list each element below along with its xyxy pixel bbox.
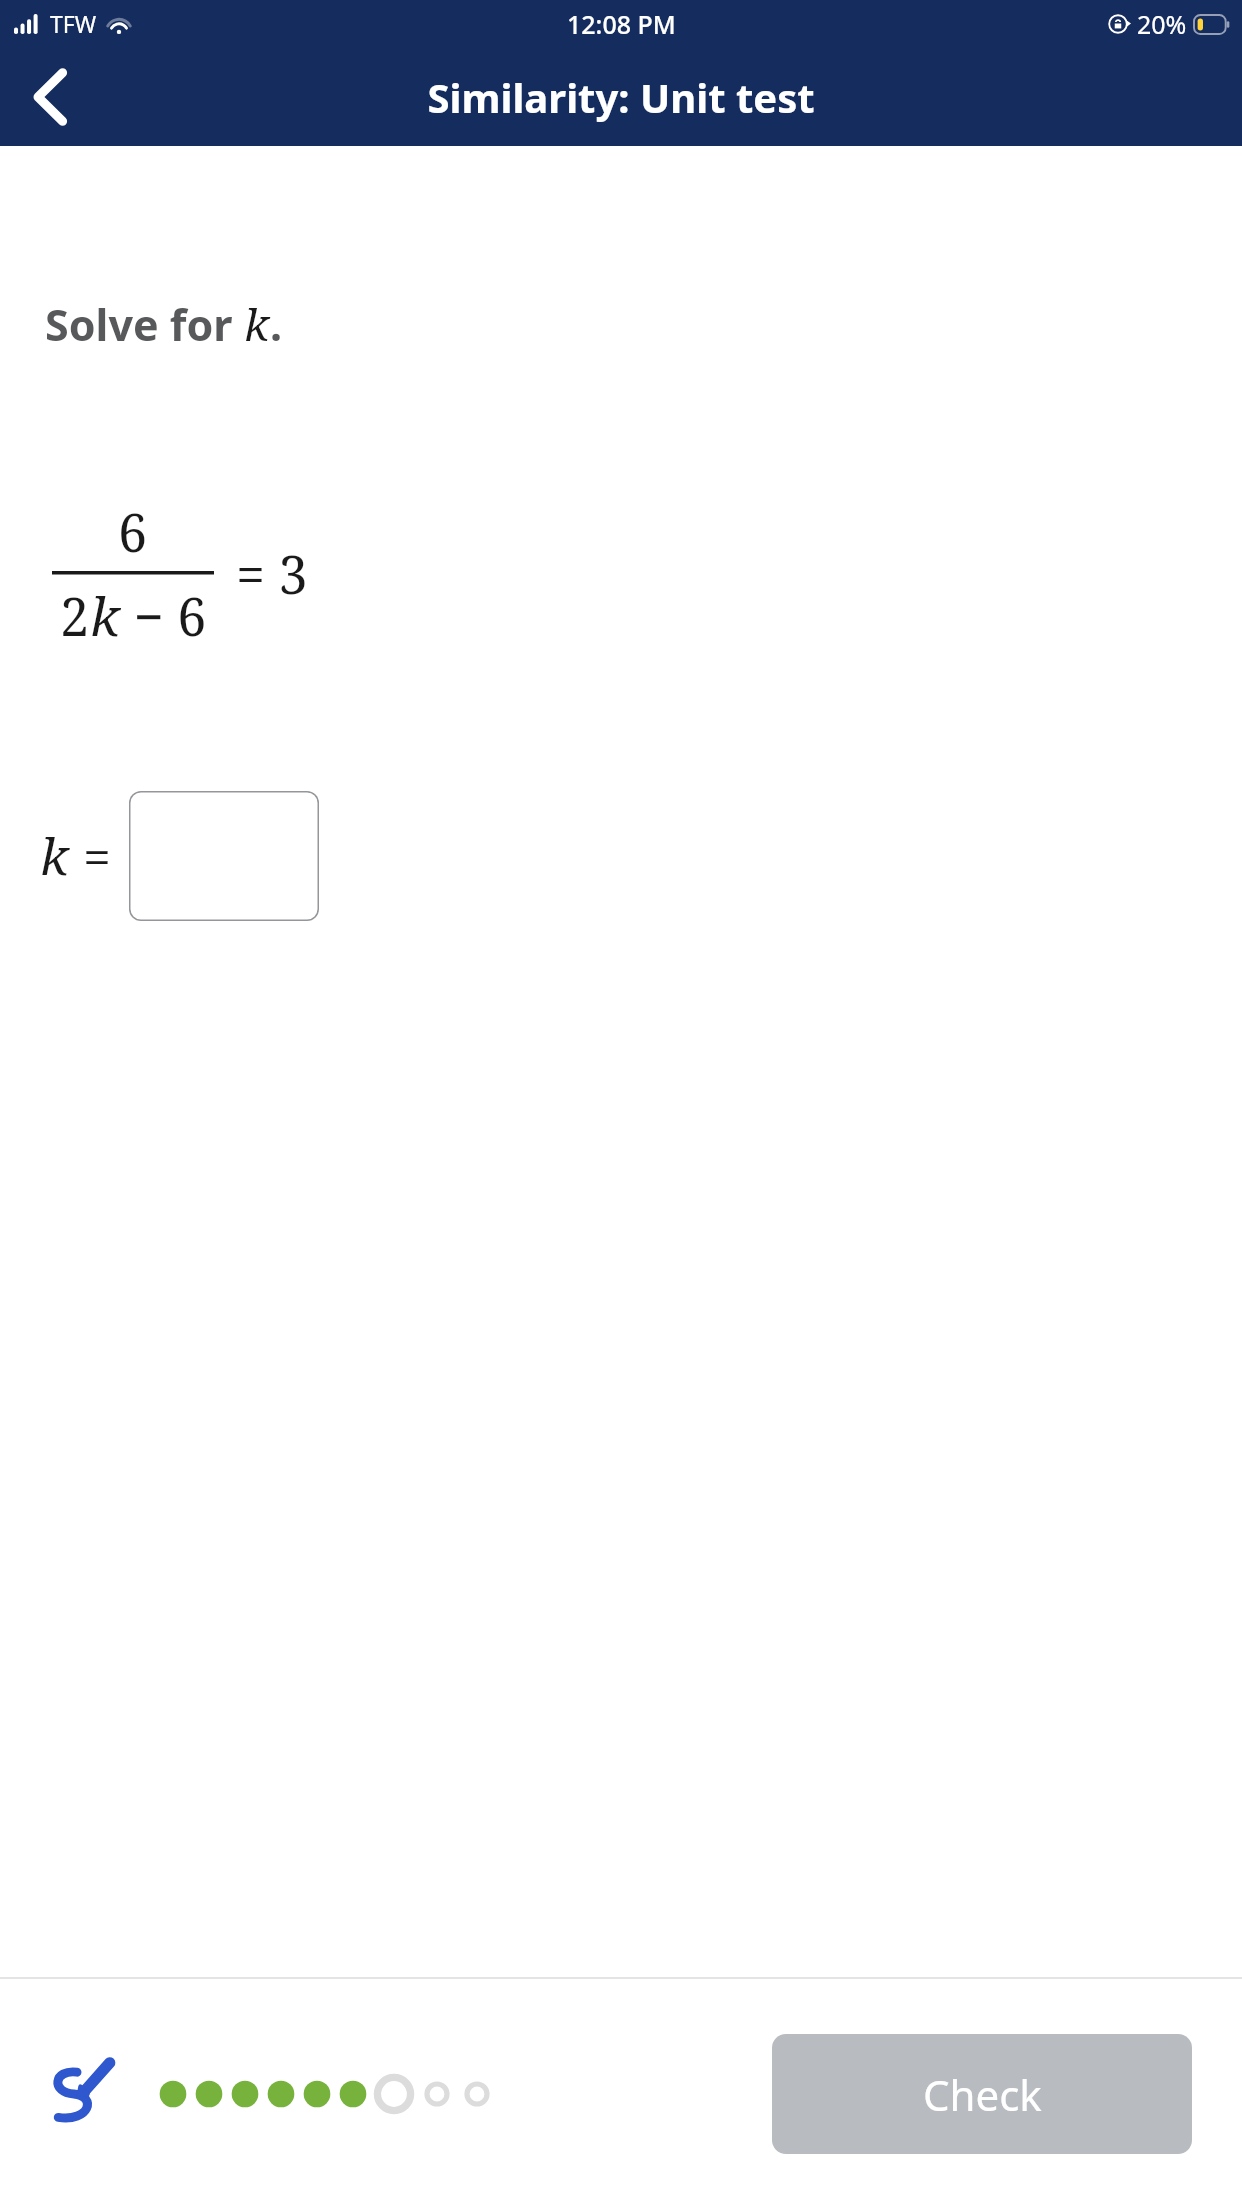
staticText: 20% bbox=[1137, 7, 1187, 41]
staticText: TFW bbox=[50, 8, 97, 39]
staticText: Similarity: Unit test bbox=[427, 70, 815, 124]
staticText: Check bbox=[923, 2066, 1042, 2123]
staticText: k bbox=[244, 294, 270, 354]
staticText: k bbox=[40, 822, 69, 890]
button[interactable]: Scratchpad bbox=[22, 2039, 132, 2149]
button[interactable]: Back bbox=[0, 47, 100, 146]
staticText: Solve for bbox=[45, 295, 244, 354]
staticText: = 3 bbox=[236, 538, 308, 609]
staticText: . bbox=[270, 295, 283, 354]
button[interactable]: Check bbox=[772, 2034, 1192, 2154]
button[interactable]: Answer input bbox=[129, 791, 319, 921]
staticText: 2 bbox=[60, 580, 90, 651]
staticText: k bbox=[90, 580, 120, 651]
staticText: 12:08 PM bbox=[567, 7, 676, 41]
staticText: − 6 bbox=[120, 580, 207, 651]
staticText: 6 bbox=[118, 496, 148, 567]
staticText: = bbox=[83, 822, 111, 890]
